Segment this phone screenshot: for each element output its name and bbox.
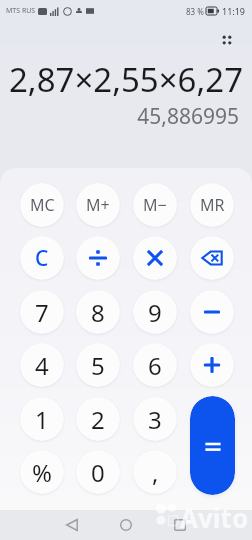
staticText: % xyxy=(32,456,52,489)
button[interactable]: 3 xyxy=(133,397,177,441)
staticText: 45,886995 xyxy=(13,102,239,131)
button[interactable]: 9 xyxy=(133,290,177,334)
button[interactable]: Home xyxy=(111,510,141,540)
staticText: , xyxy=(152,456,159,489)
staticText: 2 xyxy=(91,403,105,436)
button[interactable]: 7 xyxy=(20,290,64,334)
staticText: 8 xyxy=(91,296,105,329)
staticText: 9 xyxy=(148,296,162,329)
button[interactable]: 4 xyxy=(20,343,64,387)
button[interactable]: M+ xyxy=(76,183,120,227)
staticText: 4 xyxy=(35,349,49,382)
button[interactable]: Backspace xyxy=(190,236,234,280)
button[interactable]: MR xyxy=(190,183,234,227)
button[interactable]: 5 xyxy=(76,343,120,387)
staticText: 1 xyxy=(35,403,49,436)
staticText: MC xyxy=(30,194,55,216)
button[interactable]: 2 xyxy=(76,397,120,441)
staticText: 3 xyxy=(148,403,162,436)
button[interactable]: Plus xyxy=(190,343,234,387)
button[interactable]: 8 xyxy=(76,290,120,334)
button[interactable]: Equals xyxy=(190,396,235,495)
button[interactable]: MC xyxy=(20,183,64,227)
staticText: 7 xyxy=(35,296,49,329)
button[interactable]: , xyxy=(133,450,177,494)
button[interactable]: 0 xyxy=(76,450,120,494)
staticText: M− xyxy=(143,194,167,216)
button[interactable]: C xyxy=(20,236,64,280)
staticText: 83 % xyxy=(186,6,204,17)
button[interactable]: 1 xyxy=(20,397,64,441)
button[interactable]: Back xyxy=(57,510,87,540)
staticText: Avito xyxy=(180,500,249,535)
staticText: 2,87×2,55×6,27 xyxy=(0,57,252,102)
button[interactable]: Recents xyxy=(165,510,195,540)
button[interactable]: M− xyxy=(133,183,177,227)
button[interactable]: Multiply xyxy=(133,236,177,280)
staticText: 11:19 xyxy=(222,5,246,17)
staticText: 6 xyxy=(148,349,162,382)
button[interactable]: More options xyxy=(214,27,240,53)
staticText: M+ xyxy=(86,194,110,216)
staticText: MTS RUS xyxy=(6,6,36,16)
staticText: C xyxy=(35,244,49,273)
staticText: 5 xyxy=(91,349,105,382)
button[interactable]: % xyxy=(20,450,64,494)
staticText: 0 xyxy=(91,456,105,489)
button[interactable]: Divide xyxy=(76,236,120,280)
button[interactable]: 6 xyxy=(133,343,177,387)
button[interactable]: Minus xyxy=(190,290,234,334)
staticText: MR xyxy=(200,194,225,216)
